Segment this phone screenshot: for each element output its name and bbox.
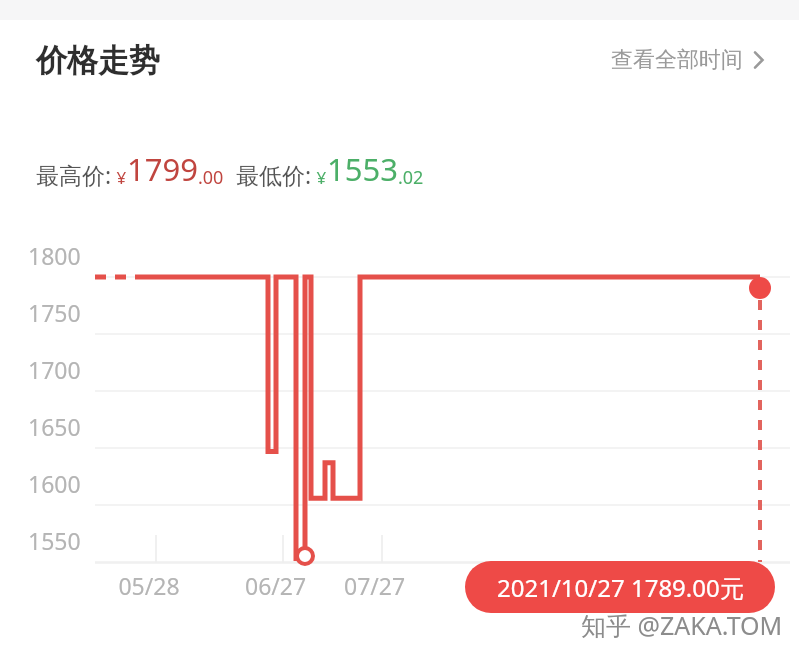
button[interactable]: 2021/10/27 1789.00元 (465, 561, 775, 613)
staticText: 05/28 (118, 570, 180, 601)
staticText: .00 (198, 165, 224, 190)
staticText: ¥ (312, 166, 327, 189)
staticText: 1700 (28, 354, 81, 385)
staticText: ¥ (112, 166, 127, 189)
staticText: 07/27 (344, 570, 406, 601)
staticText: 06/27 (245, 570, 307, 601)
staticText: 1650 (28, 411, 81, 442)
staticText: 1750 (28, 297, 81, 328)
staticText: 最高价: (36, 159, 112, 190)
staticText: 最低价: (224, 159, 312, 190)
staticText: 1800 (28, 240, 81, 271)
staticText: 查看全部时间 (611, 46, 743, 74)
staticText: 2021/10/27 1789.00元 (497, 571, 744, 604)
staticText: 1799 (127, 148, 198, 190)
staticText: 1600 (28, 468, 81, 499)
staticText: 知乎 @ZAKA.TOM (581, 608, 783, 642)
staticText: 价格走势 (36, 41, 160, 80)
button[interactable]: 查看全部时间 (595, 36, 799, 84)
staticText: 1553 (327, 148, 398, 190)
staticText: .02 (398, 165, 424, 190)
staticText: 1550 (28, 525, 81, 556)
